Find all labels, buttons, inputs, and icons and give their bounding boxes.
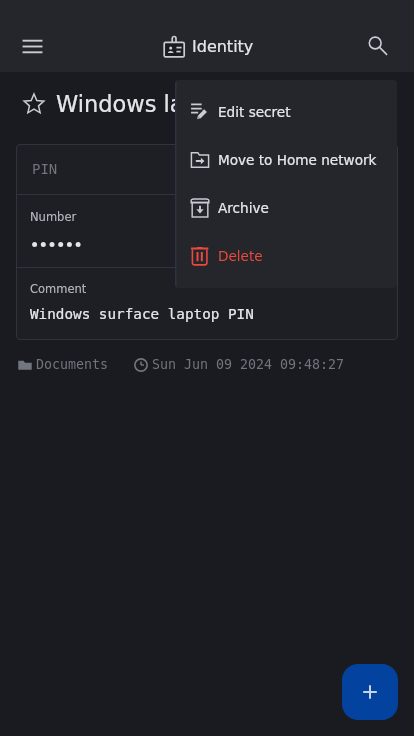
staticText: Documents — [36, 357, 109, 372]
staticText: Move to Home network — [218, 152, 377, 168]
staticText: Edit secret — [218, 104, 291, 120]
button[interactable]: Add secret — [342, 664, 398, 720]
staticText: Number — [30, 210, 77, 223]
button[interactable]: PIN — [16, 144, 398, 194]
button[interactable]: Move to Home network — [175, 136, 397, 184]
staticText: Archive — [218, 200, 269, 216]
button[interactable]: Search — [355, 22, 403, 70]
button[interactable]: Delete — [175, 232, 397, 280]
button[interactable]: Archive — [175, 184, 397, 232]
staticText: Comment — [30, 282, 87, 295]
button[interactable]: Open navigation menu — [8, 22, 56, 70]
staticText: PIN — [32, 161, 58, 177]
button[interactable]: Edit secret — [175, 88, 397, 136]
staticText: Sun Jun 09 2024 09:48:27 — [152, 357, 345, 372]
button[interactable]: Comment — [16, 268, 398, 340]
staticText: Windows laptop PIN — [56, 91, 279, 117]
button[interactable]: Add to favorites — [21, 91, 47, 117]
staticText: Identity — [192, 37, 254, 56]
staticText: Windows surface laptop PIN — [30, 306, 254, 323]
staticText: Delete — [218, 248, 263, 264]
button[interactable]: Number — [16, 195, 398, 267]
